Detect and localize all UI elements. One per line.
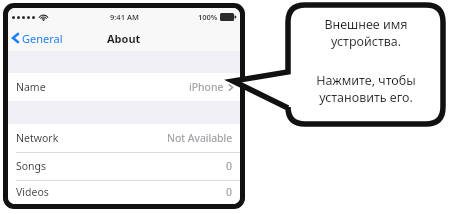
- staticText: Songs: [16, 159, 47, 173]
- staticText: 100%: [198, 12, 218, 22]
- staticText: Внешнее имя устройства.: [324, 16, 408, 49]
- staticText: Not Available: [167, 131, 233, 145]
- staticText: 0: [226, 185, 233, 199]
- button[interactable]: Name: [8, 73, 240, 101]
- button[interactable]: General: [8, 25, 69, 51]
- button[interactable]: Songs: [8, 152, 240, 180]
- staticText: Network: [16, 131, 59, 145]
- staticText: General: [22, 31, 63, 46]
- button[interactable]: Videos: [8, 180, 240, 204]
- staticText: Videos: [16, 185, 49, 199]
- button[interactable]: Network: [8, 124, 240, 152]
- staticText: 0: [226, 159, 233, 173]
- staticText: 9:41 AM: [110, 12, 139, 22]
- staticText: Нажмите, чтобы установить его.: [316, 72, 416, 105]
- staticText: Name: [16, 80, 46, 94]
- staticText: iPhone: [189, 80, 224, 94]
- staticText: About: [107, 31, 141, 46]
- other: Подсказка: Внешнее имя устройства: [228, 0, 454, 132]
